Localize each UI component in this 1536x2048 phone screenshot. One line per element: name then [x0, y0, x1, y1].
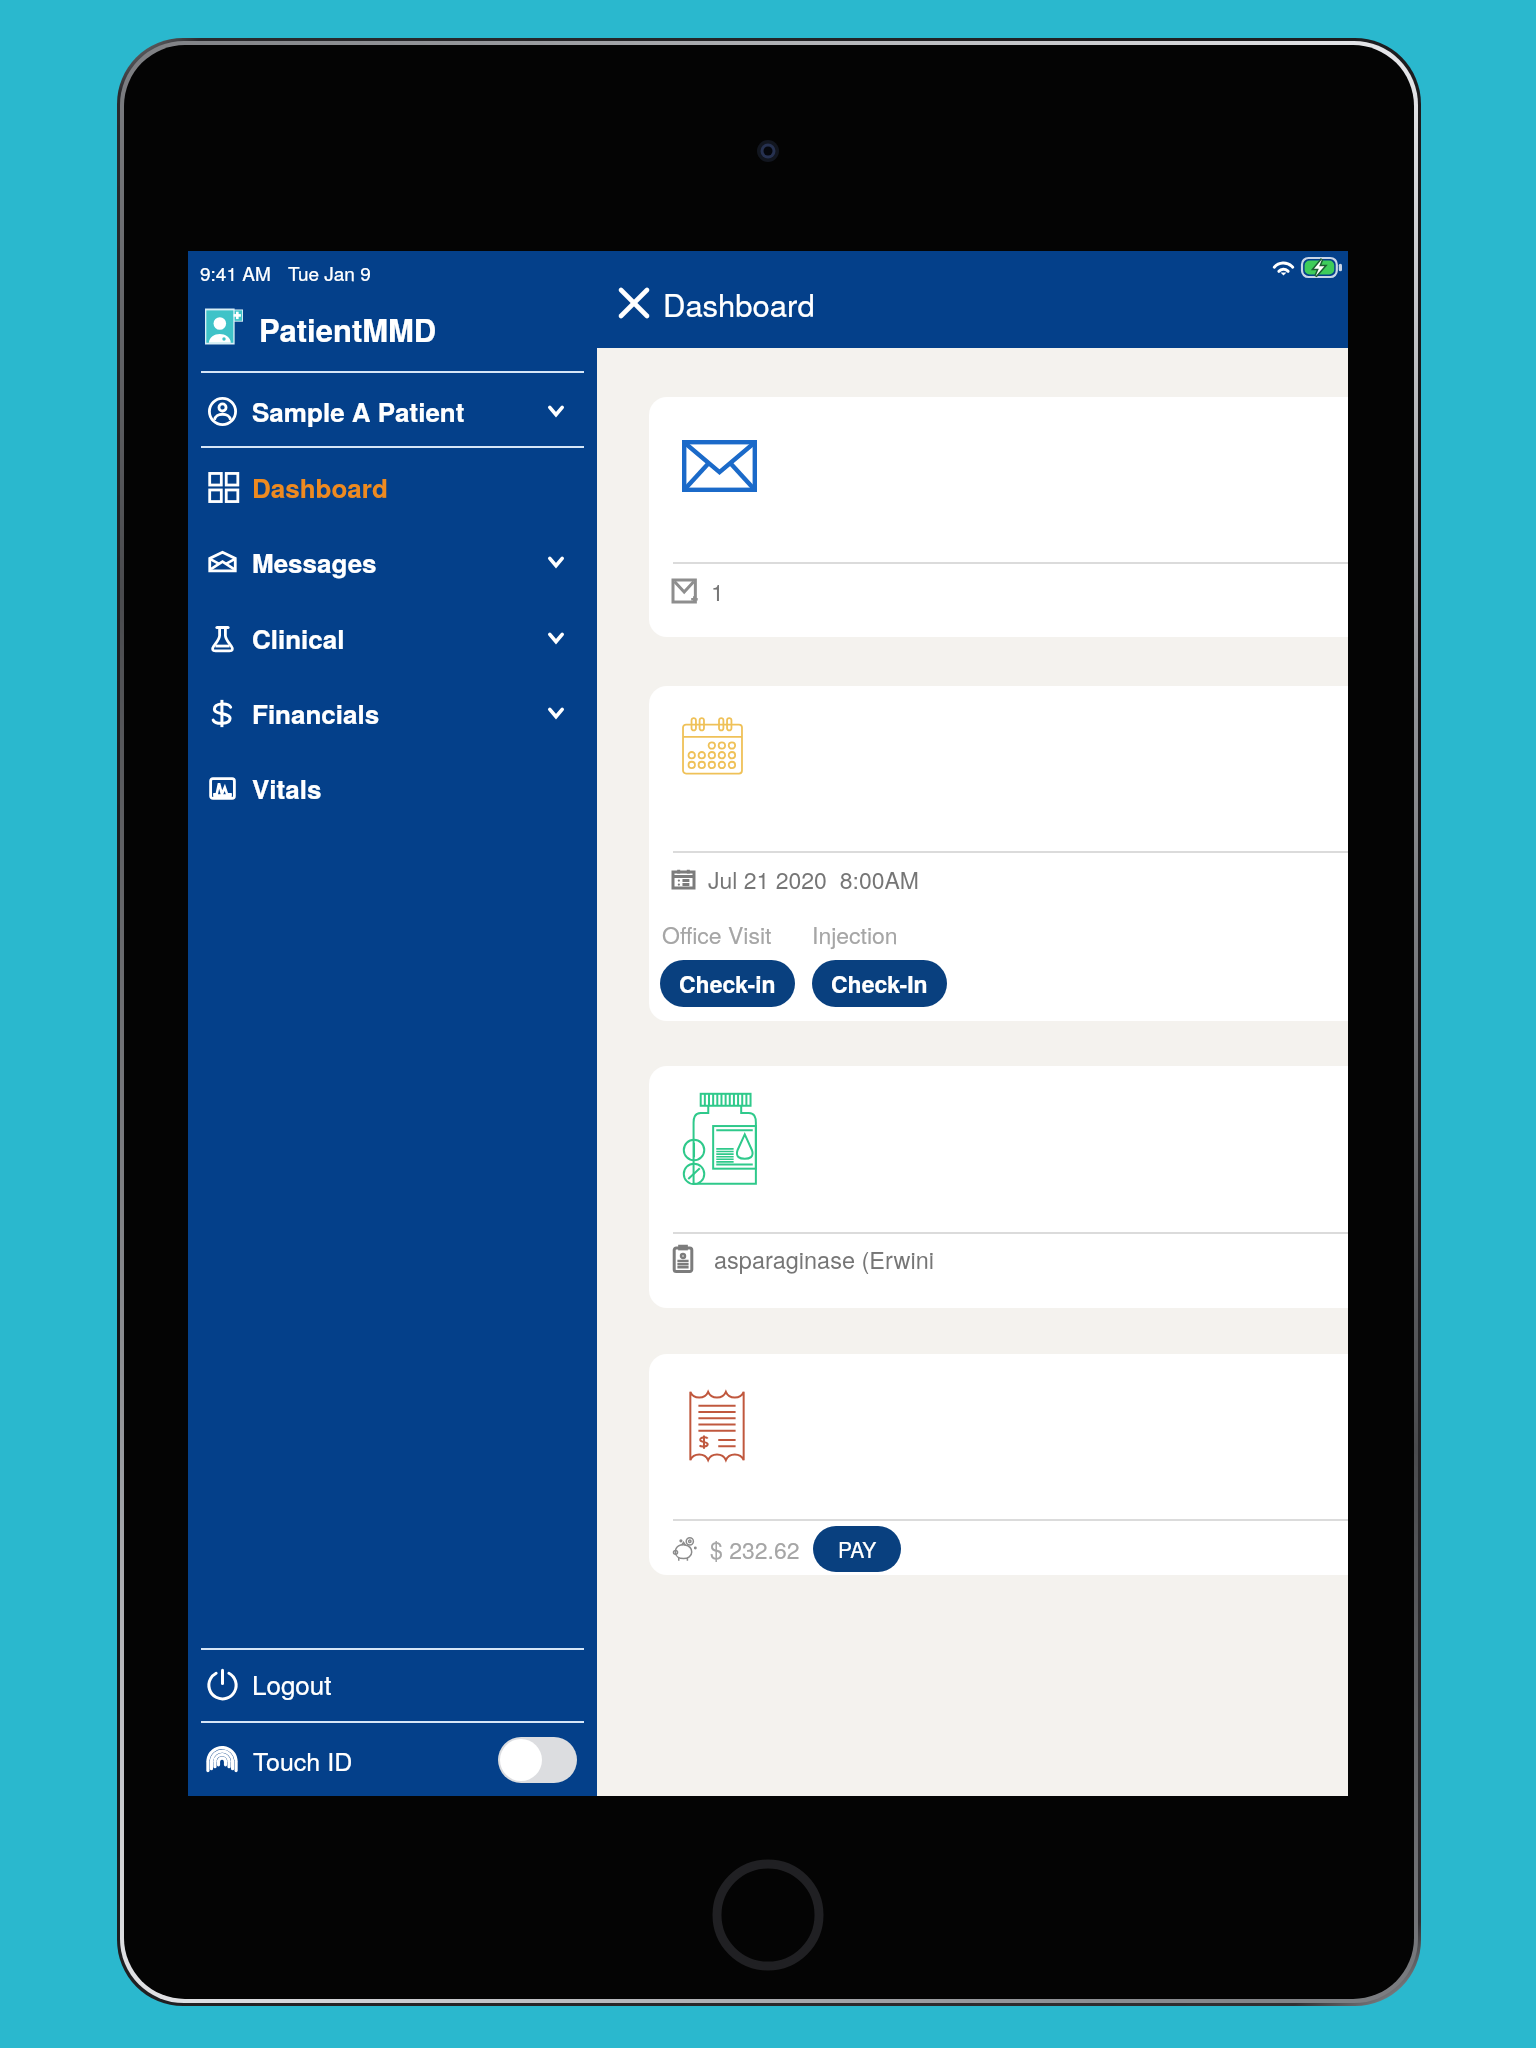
- button[interactable]: PAY: [813, 1526, 901, 1572]
- staticText: Check-in: [679, 967, 776, 1000]
- button[interactable]: $ 232.62: [649, 1354, 1348, 1575]
- button[interactable]: Dashboard: [208, 461, 564, 513]
- button[interactable]: Clinical: [208, 612, 564, 664]
- button[interactable]: Touch ID: [206, 1730, 577, 1790]
- button[interactable]: Vitals: [208, 762, 564, 814]
- staticText: Financials: [252, 695, 380, 732]
- button[interactable]: Logout: [208, 1657, 564, 1709]
- staticText: Check-In: [831, 967, 928, 1000]
- staticText: Dashboard: [663, 281, 815, 325]
- button[interactable]: 1: [649, 397, 1348, 637]
- button[interactable]: Sample A Patient: [208, 385, 564, 437]
- button[interactable]: Financials: [208, 687, 564, 739]
- staticText: Dashboard: [252, 469, 388, 506]
- staticText: Logout: [252, 1665, 332, 1702]
- staticText: Tue Jan 9: [288, 259, 371, 286]
- staticText: PatientMMD: [259, 307, 437, 345]
- staticText: PAY: [838, 1534, 877, 1564]
- button[interactable]: PatientMMD: [188, 307, 597, 345]
- button[interactable]: Check-in: [660, 960, 795, 1007]
- staticText: Clinical: [252, 620, 345, 657]
- button[interactable]: Touch ID toggle: [498, 1737, 577, 1783]
- staticText: Injection: [812, 918, 898, 951]
- button[interactable]: asparaginase (Erwini: [649, 1066, 1348, 1308]
- staticText: asparaginase (Erwini: [714, 1242, 934, 1276]
- staticText: Office Visit: [662, 918, 772, 951]
- button[interactable]: Jul 21 2020 8:00AM: [649, 686, 1348, 1021]
- staticText: 9:41 AM: [200, 259, 271, 286]
- staticText: $ 232.62: [710, 1533, 800, 1566]
- staticText: Sample A Patient: [252, 393, 465, 430]
- button[interactable]: Messages: [208, 536, 564, 588]
- staticText: Jul 21 2020 8:00AM: [708, 863, 919, 895]
- staticText: Touch ID: [253, 1742, 353, 1778]
- button[interactable]: Check-In: [812, 960, 947, 1007]
- button[interactable]: Close: [613, 282, 655, 324]
- staticText: Vitals: [252, 770, 322, 807]
- staticText: 1: [711, 575, 724, 607]
- staticText: Messages: [252, 544, 377, 581]
